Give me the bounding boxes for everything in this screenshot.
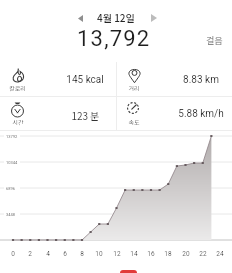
staticText: 6896 (6, 186, 15, 191)
staticText: 10 (95, 250, 103, 258)
button[interactable]: Start workout (120, 270, 137, 273)
staticText: 2 (28, 250, 32, 258)
staticText: 거리 (128, 84, 140, 93)
staticText: 속도 (128, 118, 140, 127)
staticText: 5.88 km/h (178, 108, 224, 120)
staticText: 145 kcal (66, 74, 104, 86)
staticText: 13792 (6, 134, 18, 139)
staticText: 8 (80, 250, 84, 258)
staticText: 0 (11, 250, 15, 258)
staticText: 10344 (6, 160, 18, 165)
button[interactable]: 거리 (116, 62, 232, 96)
staticText: 6 (63, 250, 67, 258)
button[interactable]: 시간 (0, 96, 116, 130)
staticText: 4월 12일 (97, 10, 135, 24)
button[interactable]: Next day (145, 10, 163, 26)
staticText: 4 (46, 250, 50, 258)
staticText: 걸음 (206, 34, 223, 47)
button[interactable]: Previous day (71, 10, 89, 26)
staticText: 12 (113, 250, 121, 258)
button[interactable]: 칼로리 (0, 62, 116, 96)
staticText: 13,792 (77, 26, 151, 52)
staticText: 24 (216, 250, 224, 258)
staticText: 3448 (6, 212, 15, 217)
staticText: 시간 (12, 118, 24, 127)
staticText: 8.83 km (183, 74, 219, 86)
staticText: 20 (182, 250, 190, 258)
staticText: 칼로리 (9, 84, 26, 93)
staticText: 18 (164, 250, 172, 258)
staticText: 14 (130, 250, 138, 258)
staticText: 123 분 (71, 108, 100, 122)
staticText: 16 (147, 250, 155, 258)
staticText: 22 (199, 250, 207, 258)
button[interactable]: 속도 (116, 96, 232, 130)
